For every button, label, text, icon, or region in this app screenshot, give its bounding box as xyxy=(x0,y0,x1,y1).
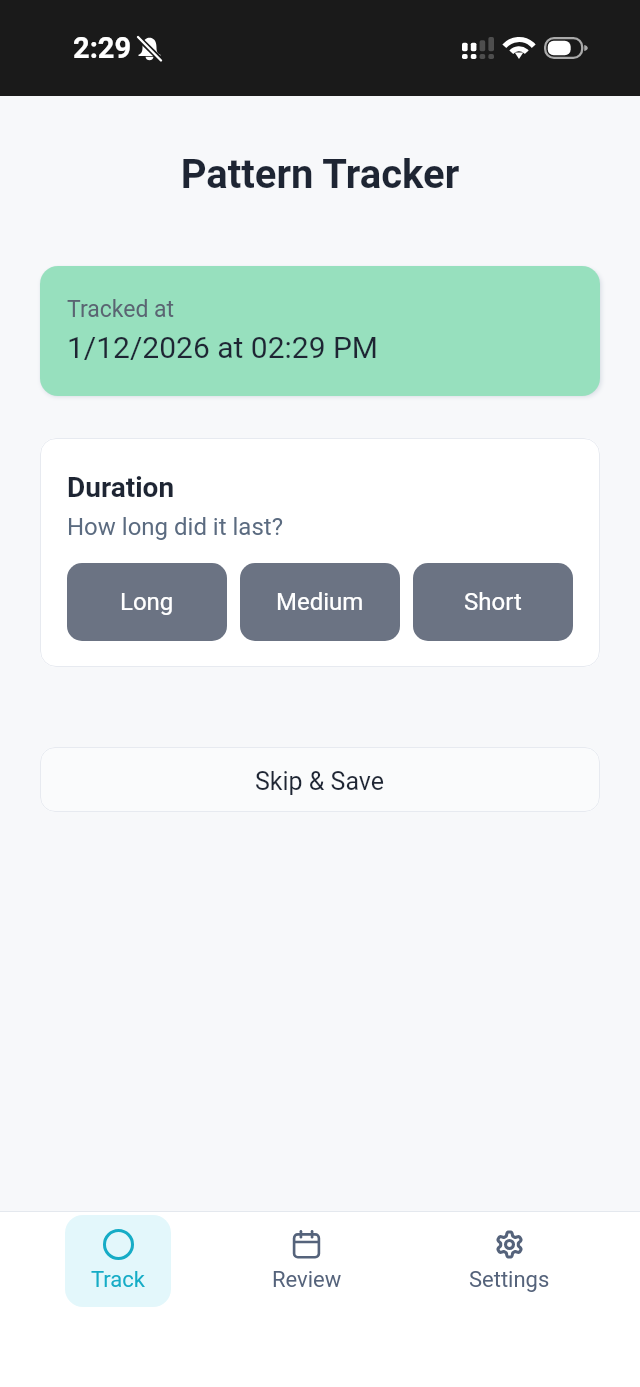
staticText: Review xyxy=(272,1267,342,1293)
staticText: Long xyxy=(120,588,174,616)
button[interactable]: Short xyxy=(413,563,573,641)
staticText: Skip & Save xyxy=(255,767,385,796)
staticText: 2:29 xyxy=(73,31,132,65)
button[interactable]: Skip & Save xyxy=(40,747,600,812)
button[interactable]: Settings xyxy=(443,1215,576,1307)
staticText: Settings xyxy=(469,1267,550,1293)
staticText: Short xyxy=(464,588,522,616)
staticText: Track xyxy=(91,1267,145,1293)
button[interactable]: Review xyxy=(235,1215,378,1307)
staticText: Duration xyxy=(67,471,175,504)
staticText: Medium xyxy=(276,588,364,616)
staticText: Tracked at xyxy=(67,296,175,323)
button[interactable]: Medium xyxy=(240,563,400,641)
staticText: How long did it last? xyxy=(67,513,283,541)
staticText: Pattern Tracker xyxy=(0,151,640,198)
button[interactable]: Tracked at xyxy=(40,266,600,396)
button[interactable]: Track xyxy=(65,1215,171,1307)
button[interactable]: Long xyxy=(67,563,227,641)
staticText: 1/12/2026 at 02:29 PM xyxy=(67,330,379,365)
